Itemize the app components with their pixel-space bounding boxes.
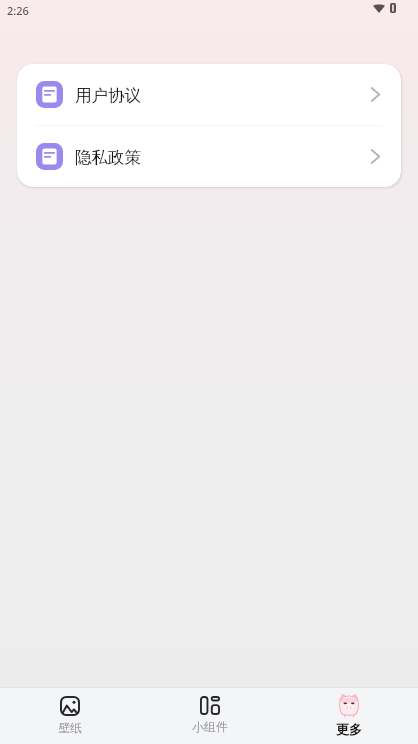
button[interactable]: 用户协议 — [17, 64, 401, 125]
button[interactable]: 小组件 — [140, 688, 279, 744]
button[interactable]: 隐私政策 — [17, 126, 401, 187]
staticText: 2:26 — [7, 3, 29, 18]
button[interactable]: 更多 — [279, 688, 418, 744]
staticText: 小组件 — [192, 719, 228, 734]
staticText: 更多 — [336, 721, 362, 737]
staticText: 用户协议 — [75, 85, 141, 106]
staticText: 壁纸 — [58, 720, 82, 735]
button[interactable]: 壁纸 — [0, 688, 140, 744]
staticText: 隐私政策 — [75, 147, 141, 168]
